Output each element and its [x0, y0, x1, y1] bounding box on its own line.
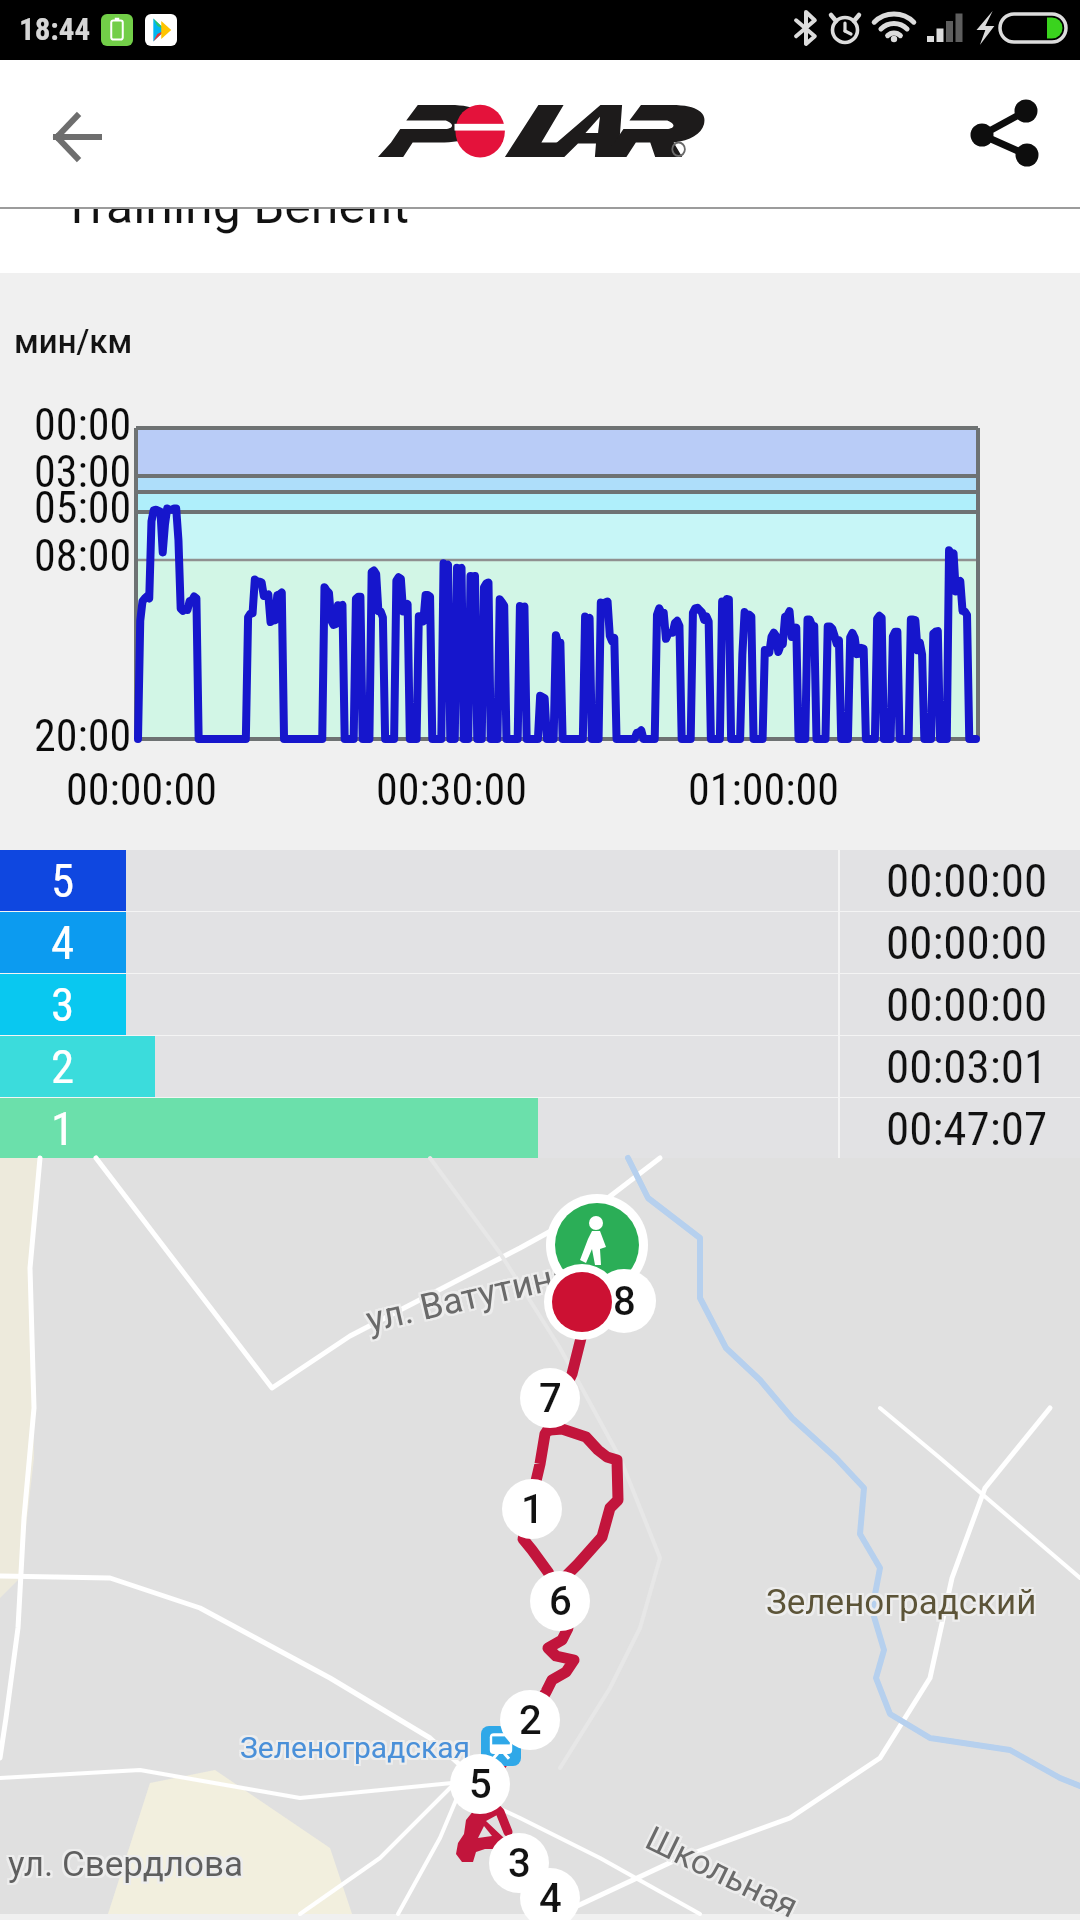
staticText: ул. Ватутина — [363, 1250, 578, 1339]
staticText: ул. Ватутина — [361, 1251, 576, 1339]
button[interactable]: 7 — [520, 1368, 580, 1428]
button[interactable]: Station — [481, 1726, 521, 1766]
button[interactable]: 4 — [520, 1868, 580, 1920]
button[interactable]: 3 — [0, 974, 1080, 1035]
staticText: ул. Свердлова — [8, 1842, 244, 1883]
staticText: Зеленоградская — [240, 1730, 470, 1765]
staticText: 7 — [539, 1375, 562, 1422]
staticText: 00:00:00 — [886, 853, 1048, 908]
staticText: Зеленоградская — [240, 1732, 470, 1767]
staticText: Зеленоградская — [238, 1730, 468, 1765]
button[interactable]: Share — [952, 83, 1056, 187]
staticText: ул. Ватутина — [364, 1254, 579, 1343]
staticText: 6 — [549, 1578, 572, 1625]
staticText: 5 — [469, 1761, 492, 1808]
staticText: Школьная — [640, 1818, 805, 1920]
staticText: ул. Ватутина — [364, 1252, 579, 1341]
staticText: 00:47:07 — [886, 1101, 1048, 1156]
staticText: Зеленоградский — [766, 1580, 1037, 1621]
staticText: ул. Свердлова — [6, 1844, 242, 1885]
staticText: Школьная — [641, 1819, 807, 1920]
staticText: 2 — [519, 1697, 542, 1744]
staticText: Зеленоградский — [768, 1584, 1039, 1625]
staticText: 18:44 — [19, 11, 91, 47]
staticText: Зеленоградская — [238, 1728, 468, 1763]
staticText: 00:00:00 — [66, 764, 217, 816]
staticText: Школьная — [639, 1820, 804, 1920]
staticText: Школьная — [637, 1819, 803, 1920]
button[interactable]: Lap 8 — [594, 1271, 654, 1331]
button[interactable]: 3 — [489, 1833, 549, 1893]
button[interactable]: 1 — [502, 1479, 562, 1539]
staticText: 00:00 — [34, 399, 132, 451]
staticText: Зеленоградская — [242, 1730, 472, 1765]
staticText: ул. Ватутина — [362, 1253, 577, 1341]
staticText: ул. Ватутина — [360, 1253, 575, 1342]
staticText: Школьная — [640, 1820, 806, 1920]
staticText: ул. Свердлова — [6, 1846, 242, 1887]
staticText: мин/км — [14, 322, 133, 361]
staticText: Training Benefit — [62, 209, 410, 236]
staticText: ул. Свердлова — [8, 1846, 244, 1887]
staticText: ул. Свердлова — [10, 1844, 246, 1885]
staticText: Зеленоградский — [766, 1584, 1037, 1625]
staticText: 20:00 — [34, 710, 132, 762]
staticText: 8 — [613, 1278, 636, 1325]
staticText: Зеленоградский — [768, 1582, 1039, 1623]
staticText: 00:00:00 — [886, 977, 1048, 1032]
button[interactable]: 1 — [0, 1098, 1080, 1158]
staticText: Зеленоградская — [242, 1728, 472, 1763]
staticText: Зеленоградский — [764, 1580, 1035, 1621]
button[interactable]: 5 — [450, 1754, 510, 1814]
staticText: Школьная — [640, 1816, 806, 1920]
staticText: 1 — [51, 1101, 75, 1156]
button[interactable]: 4 — [0, 912, 1080, 973]
staticText: ул. Свердлова — [6, 1842, 242, 1883]
staticText: 4 — [539, 1875, 562, 1920]
staticText: Зеленоградский — [766, 1582, 1037, 1623]
button[interactable]: 5 — [0, 850, 1080, 911]
staticText: Зеленоградский — [764, 1582, 1035, 1623]
staticText: ул. Свердлова — [8, 1844, 244, 1885]
staticText: Зеленоградская — [242, 1732, 472, 1767]
staticText: 03:00 — [34, 446, 132, 498]
button[interactable]: 2 — [500, 1690, 560, 1750]
staticText: 00:00:00 — [886, 915, 1048, 970]
staticText: Школьная — [638, 1817, 804, 1920]
button[interactable]: 6 — [530, 1571, 590, 1631]
staticText: 2 — [51, 1039, 75, 1094]
staticText: 00:30:00 — [376, 764, 527, 816]
staticText: Зеленоградский — [768, 1580, 1039, 1621]
staticText: 00:03:01 — [886, 1039, 1048, 1094]
staticText: Школьная — [639, 1815, 804, 1920]
staticText: 3 — [508, 1840, 531, 1887]
staticText: ул. Ватутина — [360, 1251, 575, 1340]
staticText: 01:00:00 — [688, 764, 839, 816]
button[interactable]: Back — [24, 83, 128, 187]
staticText: 05:00 — [34, 482, 132, 534]
staticText: Зеленоградская — [240, 1728, 470, 1763]
staticText: 3 — [51, 977, 75, 1032]
staticText: 1 — [521, 1486, 544, 1533]
staticText: 4 — [51, 915, 75, 970]
staticText: 5 — [51, 853, 75, 908]
staticText: ул. Свердлова — [10, 1842, 246, 1883]
staticText: Школьная — [642, 1817, 808, 1920]
staticText: Зеленоградский — [764, 1584, 1035, 1625]
staticText: ул. Свердлова — [10, 1846, 246, 1887]
staticText: Зеленоградская — [238, 1732, 468, 1767]
staticText: ул. Ватутина — [360, 1255, 575, 1344]
staticText: 08:00 — [34, 530, 132, 582]
staticText: ул. Ватутина — [362, 1255, 577, 1343]
button[interactable]: 2 — [0, 1036, 1080, 1097]
